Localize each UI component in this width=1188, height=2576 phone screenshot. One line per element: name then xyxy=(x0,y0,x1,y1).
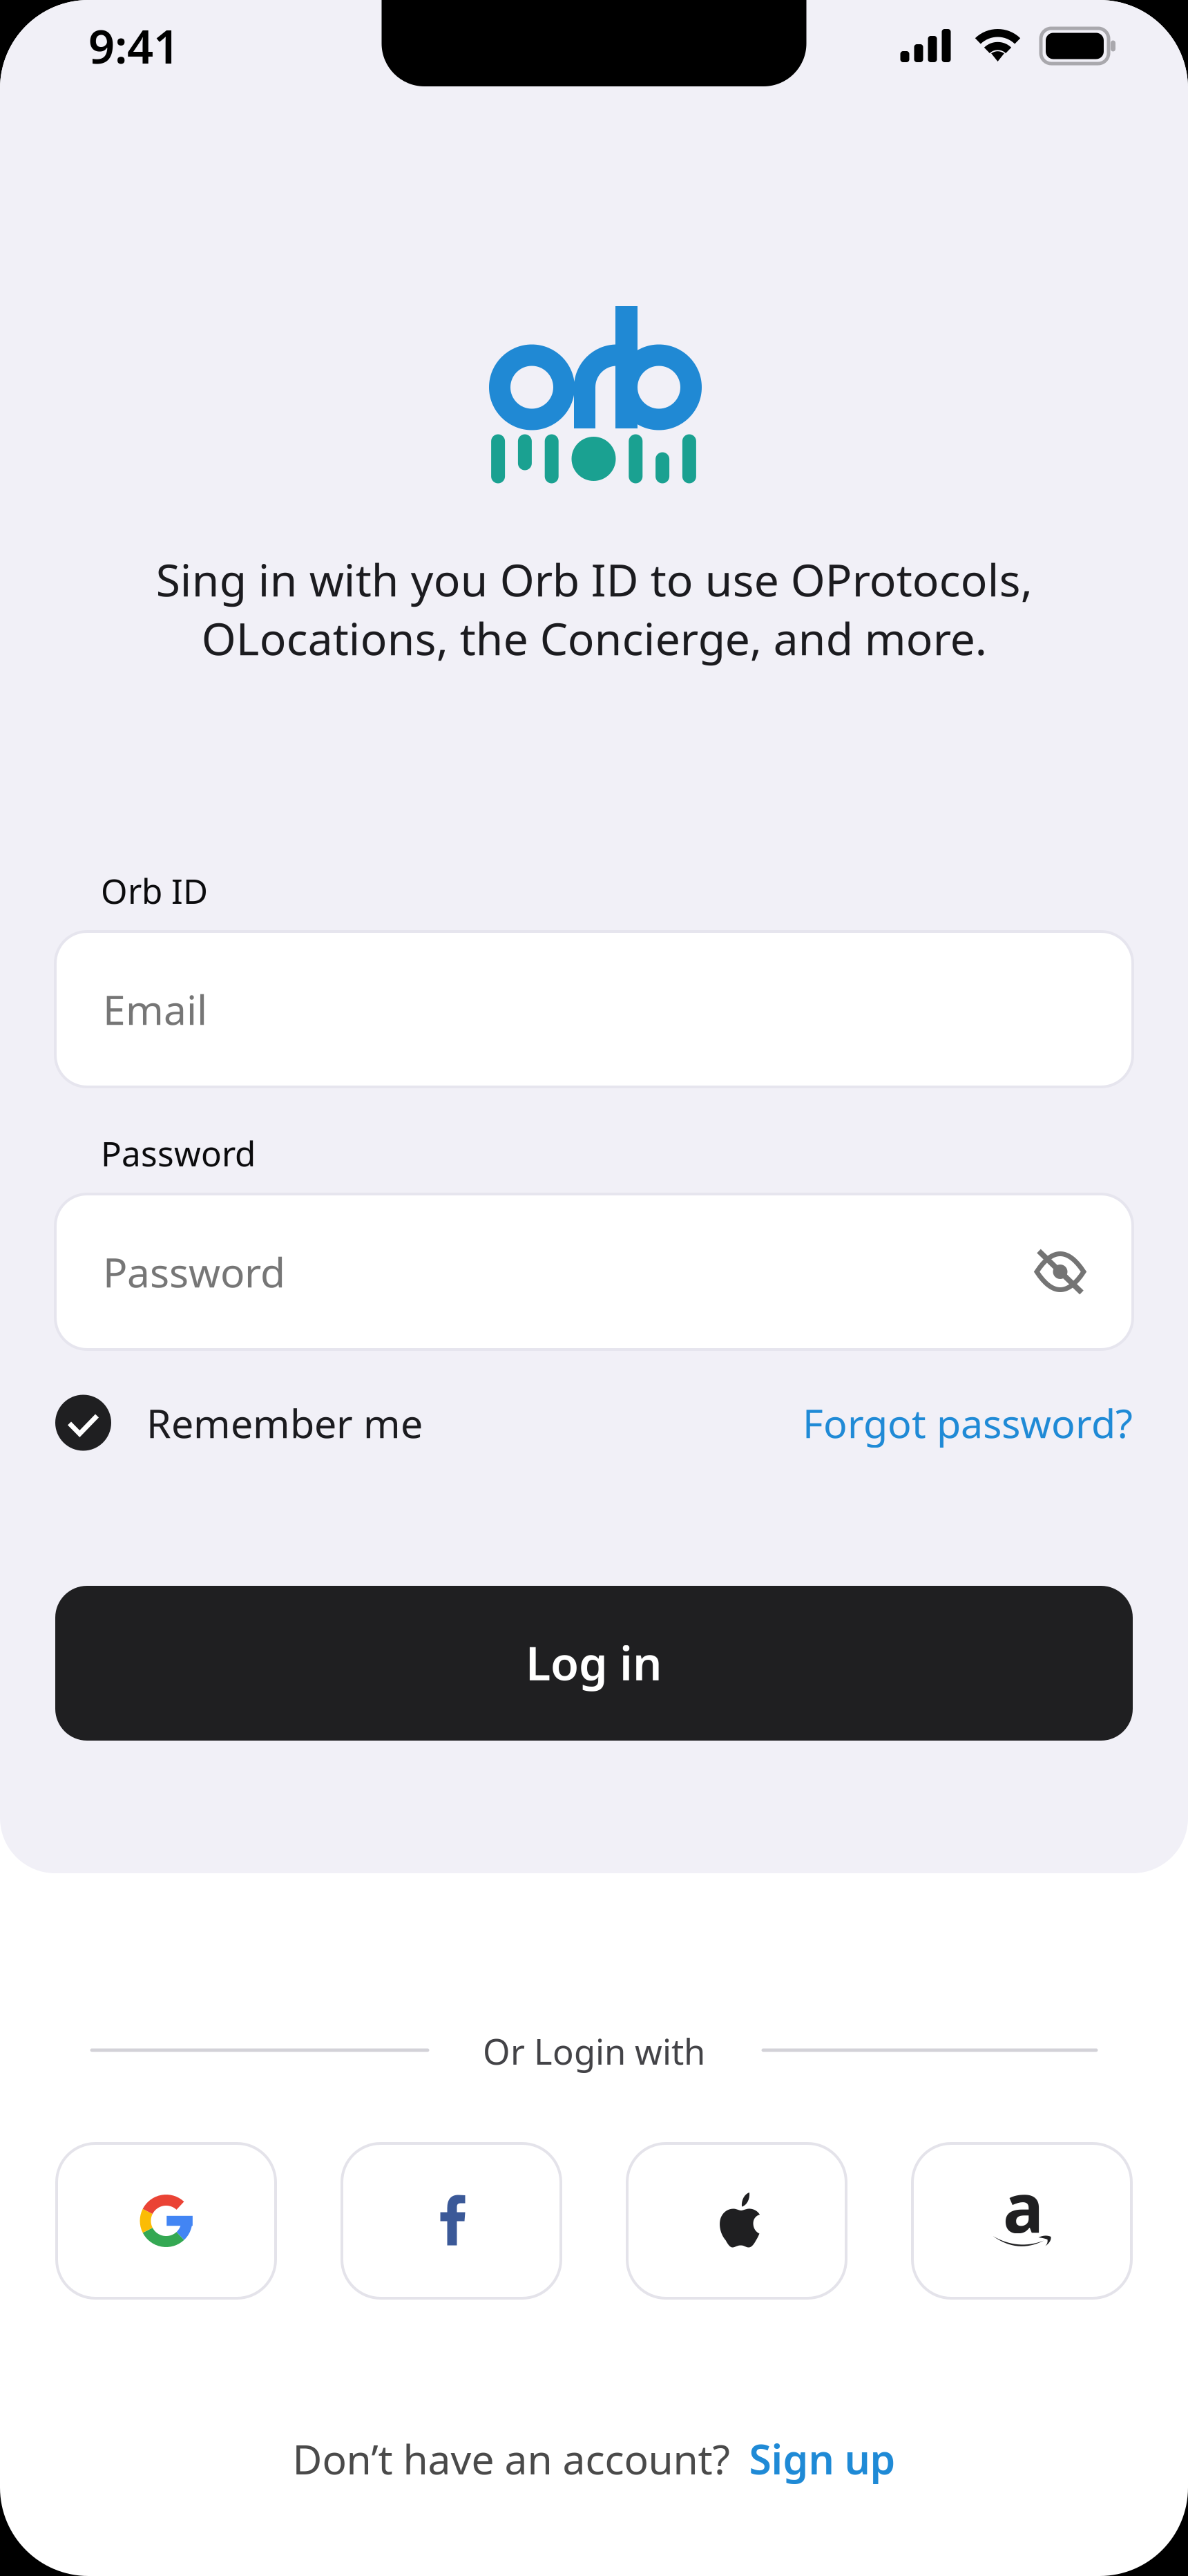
button[interactable]: Sign up xyxy=(749,2432,895,2486)
staticText: Sign up xyxy=(749,2432,895,2486)
staticText: Sing in with you Orb ID to use OProtocol… xyxy=(156,550,1032,667)
staticText: Password xyxy=(103,1245,285,1299)
button[interactable]: Sign in with Google xyxy=(57,2143,276,2298)
staticText: Remember me xyxy=(146,1396,423,1449)
staticText: Or Login with xyxy=(483,2028,705,2074)
button[interactable]: Log in xyxy=(55,1586,1133,1741)
button[interactable]: Remember me xyxy=(55,1390,539,1456)
staticText: Email xyxy=(103,982,207,1036)
button[interactable]: Forgot password? xyxy=(705,1390,1133,1456)
button[interactable]: Sign in with Facebook xyxy=(342,2143,561,2298)
button[interactable]: Sign in with Amazon xyxy=(912,2143,1131,2298)
staticText: a xyxy=(1003,2161,1044,2252)
staticText: Forgot password? xyxy=(803,1396,1133,1449)
staticText: 9:41 xyxy=(88,15,180,76)
staticText: Log in xyxy=(526,1632,662,1693)
staticText: Don’t have an account? xyxy=(293,2432,730,2486)
staticText: Password xyxy=(101,1131,256,1176)
staticText: Orb ID xyxy=(101,868,208,913)
button[interactable]: Sign in with Apple xyxy=(627,2143,846,2298)
